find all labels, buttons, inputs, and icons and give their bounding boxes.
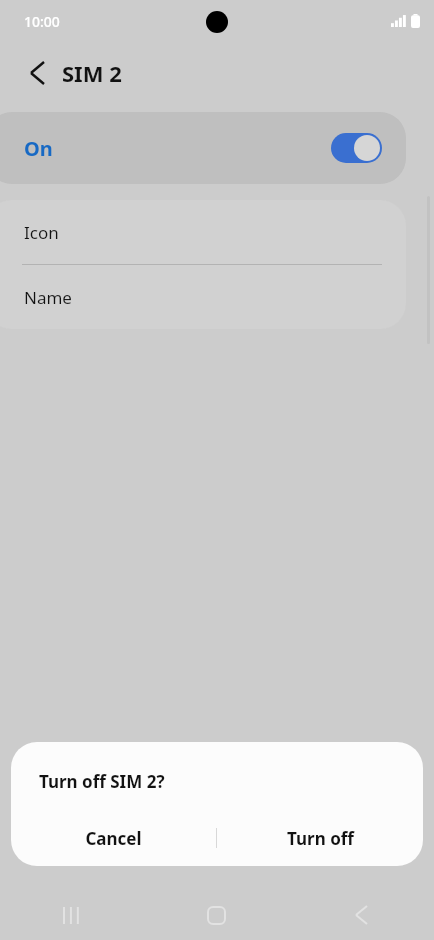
button[interactable]: Icon bbox=[0, 200, 406, 264]
button[interactable]: On bbox=[0, 112, 406, 184]
button[interactable]: Back bbox=[16, 52, 58, 94]
staticText: Cancel bbox=[85, 827, 142, 850]
staticText: Name bbox=[24, 286, 72, 309]
staticText: Turn off SIM 2? bbox=[39, 770, 165, 793]
staticText: Turn off bbox=[287, 827, 354, 850]
staticText: Icon bbox=[24, 221, 59, 244]
staticText: 10:00 bbox=[24, 12, 60, 31]
button[interactable]: Cancel bbox=[11, 810, 216, 866]
button[interactable]: Turn off bbox=[217, 810, 423, 866]
staticText: On bbox=[24, 135, 53, 162]
button[interactable]: Name bbox=[0, 265, 406, 329]
staticText: SIM 2 bbox=[62, 58, 122, 88]
